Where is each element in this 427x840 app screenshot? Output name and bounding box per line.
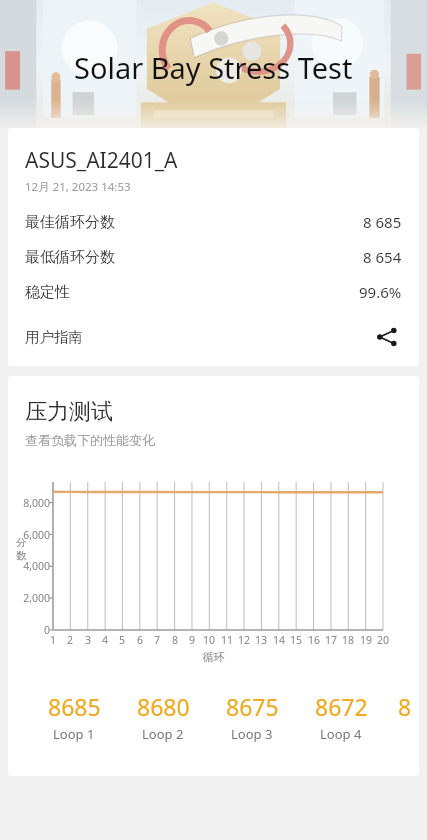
staticText: 2 xyxy=(60,633,80,647)
staticText: Loop 2 xyxy=(142,725,184,743)
staticText: 分 xyxy=(16,536,27,549)
staticText: 4,000 xyxy=(10,559,50,573)
staticText: 压力测试 xyxy=(25,398,113,426)
staticText: 19 xyxy=(356,633,376,647)
staticText: 14 xyxy=(269,633,289,647)
staticText: 15 xyxy=(286,633,306,647)
staticText: 10 xyxy=(199,633,219,647)
staticText: 8685 xyxy=(48,691,101,722)
staticText: Solar Bay Stress Test xyxy=(74,48,353,87)
button[interactable]: 8672 xyxy=(300,680,382,750)
staticText: 稳定性 xyxy=(25,283,70,302)
staticText: 1 xyxy=(43,633,63,647)
staticText: 8675 xyxy=(226,691,279,722)
staticText: 7 xyxy=(147,633,167,647)
staticText: Loop 3 xyxy=(231,725,273,743)
staticText: 6 xyxy=(130,633,150,647)
staticText: ASUS_AI2401_A xyxy=(25,146,178,175)
staticText: 8672 xyxy=(315,691,368,722)
staticText: 2,000 xyxy=(10,591,50,605)
staticText: 8680 xyxy=(137,691,190,722)
button[interactable]: 8675 xyxy=(211,680,293,750)
staticText: 数 xyxy=(16,549,27,562)
staticText: 13 xyxy=(251,633,271,647)
staticText: 循环 xyxy=(8,650,419,664)
staticText: 8 654 xyxy=(363,247,402,267)
staticText: 0 xyxy=(10,623,50,637)
staticText: 11 xyxy=(217,633,237,647)
staticText: 8 xyxy=(165,633,185,647)
staticText: 9 xyxy=(182,633,202,647)
button[interactable]: 8 xyxy=(389,680,419,750)
staticText: 4 xyxy=(95,633,115,647)
staticText: 5 xyxy=(112,633,132,647)
staticText: 18 xyxy=(338,633,358,647)
staticText: 16 xyxy=(304,633,324,647)
button[interactable]: 8685 xyxy=(33,680,115,750)
staticText: 3 xyxy=(78,633,98,647)
staticText: 20 xyxy=(373,633,393,647)
staticText: 查看负载下的性能变化 xyxy=(25,432,155,448)
staticText: 最低循环分数 xyxy=(25,248,115,267)
staticText: Loop 1 xyxy=(53,725,95,743)
button[interactable]: 8680 xyxy=(122,680,204,750)
staticText: 6,000 xyxy=(10,528,50,542)
staticText: Loop 4 xyxy=(320,725,362,743)
button[interactable]: 用户指南 xyxy=(25,320,402,354)
staticText: 99.6% xyxy=(359,282,402,302)
staticText: 12月 21, 2023 14:53 xyxy=(25,179,131,195)
staticText: 8 xyxy=(398,691,412,722)
staticText: 8,000 xyxy=(10,496,50,510)
staticText: 最佳循环分数 xyxy=(25,213,115,232)
staticText: 用户指南 xyxy=(25,328,83,346)
staticText: 8 685 xyxy=(363,212,402,232)
other: Share xyxy=(372,322,402,352)
staticText: 17 xyxy=(321,633,341,647)
staticText: 12 xyxy=(234,633,254,647)
